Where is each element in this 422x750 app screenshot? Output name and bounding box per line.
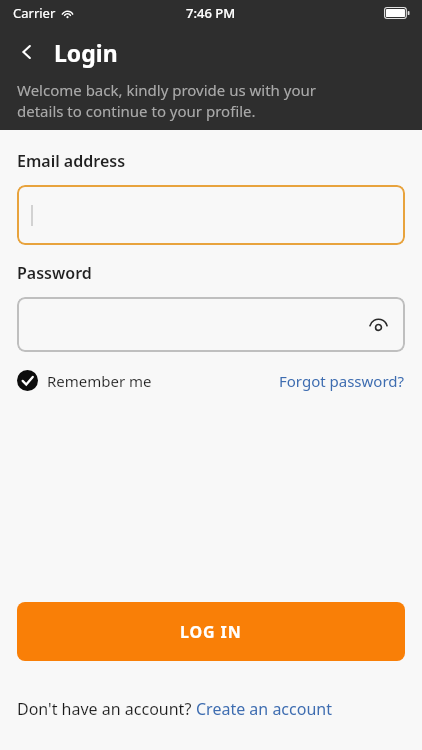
button[interactable]: Forgot password? xyxy=(279,371,405,391)
button[interactable]: Create an account xyxy=(196,698,332,720)
staticText: Don't have an account? xyxy=(17,698,196,720)
button[interactable]: Show password xyxy=(363,310,393,340)
button[interactable]: Remember me xyxy=(17,370,152,391)
staticText: Welcome back, kindly provide us with you… xyxy=(17,80,316,122)
button[interactable]: Show password xyxy=(17,297,405,352)
staticText: LOG IN xyxy=(180,621,242,643)
staticText: Login xyxy=(54,37,118,68)
button[interactable]: Back xyxy=(0,35,54,69)
staticText: Remember me xyxy=(47,371,152,391)
staticText: Create an account xyxy=(196,698,332,720)
button[interactable] xyxy=(17,185,405,245)
staticText: Forgot password? xyxy=(279,371,405,391)
staticText: Carrier xyxy=(13,4,56,22)
staticText: Password xyxy=(17,262,92,284)
staticText: Email address xyxy=(17,150,126,172)
staticText: 7:46 PM xyxy=(186,4,236,22)
button[interactable]: LOG IN xyxy=(17,602,405,661)
